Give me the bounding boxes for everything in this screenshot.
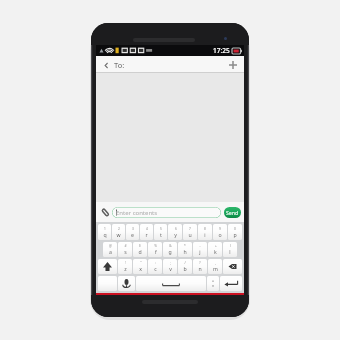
button[interactable]: $ [133,242,147,257]
staticText: $ [139,244,141,248]
staticText: , [215,261,216,265]
button[interactable]: Send [224,207,241,218]
button[interactable]: 2 [112,224,125,240]
button[interactable]: Symbols [98,276,117,291]
staticText: 3 [132,227,134,231]
staticText: : [155,261,156,265]
staticText: 1 [104,227,106,231]
staticText: - [199,244,201,248]
button[interactable]: Enter [220,276,242,291]
staticText: o [218,231,222,238]
button[interactable]: ; [163,259,177,274]
button[interactable]: Enter contents [112,207,221,218]
staticText: e [131,231,134,238]
staticText: 17:25 [213,46,230,55]
staticText: ( [230,244,231,248]
button[interactable]: ! [118,259,132,274]
staticText: m [213,265,218,272]
button[interactable]: , [208,259,222,274]
staticText: s [124,248,127,255]
button[interactable]: & [163,242,177,257]
staticText: z [124,265,127,272]
button[interactable]: 0 [228,224,242,240]
button[interactable]: - [193,242,207,257]
staticText: & [169,244,172,248]
staticText: n [198,265,202,272]
button[interactable]: Add recipient [226,58,240,72]
button[interactable]: Period [207,276,219,291]
staticText: f [155,248,157,255]
staticText: x [139,265,142,272]
staticText: j [199,248,201,255]
button[interactable]: # [118,242,132,257]
staticText: a [109,248,112,255]
staticText: g [168,248,172,255]
button[interactable]: 1 [98,224,111,240]
button[interactable]: Shift [98,259,117,274]
staticText: y [174,231,177,238]
staticText: h [183,248,187,255]
staticText: 4 [146,227,148,231]
staticText: ! [125,261,126,265]
button[interactable]: + [208,242,222,257]
staticText: Send [226,209,239,216]
button[interactable]: " [133,259,147,274]
staticText: l [229,248,231,255]
button[interactable]: Back [100,59,112,71]
staticText: 7 [189,227,191,231]
staticText: k [214,248,217,255]
staticText: ? [199,261,201,265]
button[interactable]: 6 [168,224,182,240]
staticText: ; [170,261,171,265]
staticText: c [154,265,157,272]
staticText: b [183,265,187,272]
staticText: p [233,231,237,238]
button[interactable]: 9 [213,224,227,240]
staticText: # [124,244,127,248]
button[interactable]: Voice input [118,276,135,291]
staticText: i [204,231,206,238]
staticText: 0 [234,227,236,231]
button[interactable]: % [148,242,162,257]
staticText: * [184,244,186,248]
button[interactable]: 3 [126,224,139,240]
staticText: Enter contents [116,209,158,217]
button[interactable]: 4 [140,224,153,240]
button[interactable]: 8 [198,224,212,240]
staticText: w [116,231,121,238]
staticText: d [138,248,142,255]
button[interactable]: Attach [99,206,112,219]
staticText: 9 [219,227,221,231]
staticText: 5 [160,227,162,231]
button[interactable]: 5 [154,224,167,240]
staticText: / [184,261,186,265]
button[interactable]: : [148,259,162,274]
staticText: 2 [118,227,120,231]
staticText: t [160,231,162,238]
staticText: To: [114,60,125,70]
staticText: 6 [175,227,177,231]
button[interactable]: Space [136,276,206,291]
staticText: @ [109,244,112,248]
staticText: q [103,231,107,238]
button[interactable]: Backspace [223,259,242,274]
staticText: u [188,231,192,238]
staticText: v [169,265,172,272]
button[interactable]: @ [103,242,117,257]
staticText: % [154,244,157,248]
staticText: r [145,231,148,238]
button[interactable]: ? [193,259,207,274]
button[interactable]: ( [223,242,237,257]
staticText: 8 [204,227,206,231]
staticText: + [215,244,217,248]
button[interactable]: 7 [183,224,197,240]
staticText: " [140,261,142,265]
button[interactable]: * [178,242,192,257]
button[interactable]: / [178,259,192,274]
